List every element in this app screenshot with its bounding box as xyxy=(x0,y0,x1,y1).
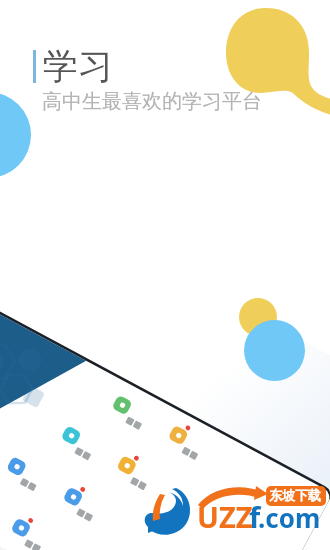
staticText: 学习 xyxy=(43,44,113,88)
staticText: f xyxy=(249,497,261,536)
staticText: UZZ xyxy=(197,497,253,536)
staticText: 东坡下载 xyxy=(269,487,321,503)
staticText: .com xyxy=(258,500,321,535)
staticText: 高中生最喜欢的学习平台 xyxy=(42,89,262,114)
